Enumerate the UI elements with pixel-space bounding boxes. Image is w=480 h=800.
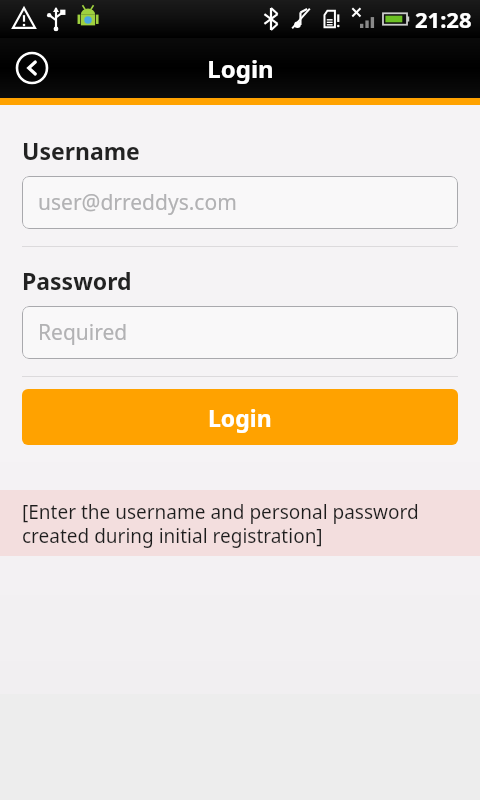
button[interactable]: user@drreddys.com <box>22 176 458 229</box>
staticText: Password <box>22 265 132 296</box>
button[interactable]: Login <box>22 389 458 445</box>
button[interactable]: Required <box>22 306 458 359</box>
staticText: Required <box>38 318 128 347</box>
staticText: [Enter the username and personal passwor… <box>22 499 458 548</box>
staticText: Username <box>22 135 140 166</box>
staticText: 21:28 <box>415 4 472 34</box>
staticText: user@drreddys.com <box>38 188 237 217</box>
staticText: Login <box>207 52 274 85</box>
button[interactable]: Back <box>8 44 56 92</box>
staticText: Login <box>208 402 272 433</box>
